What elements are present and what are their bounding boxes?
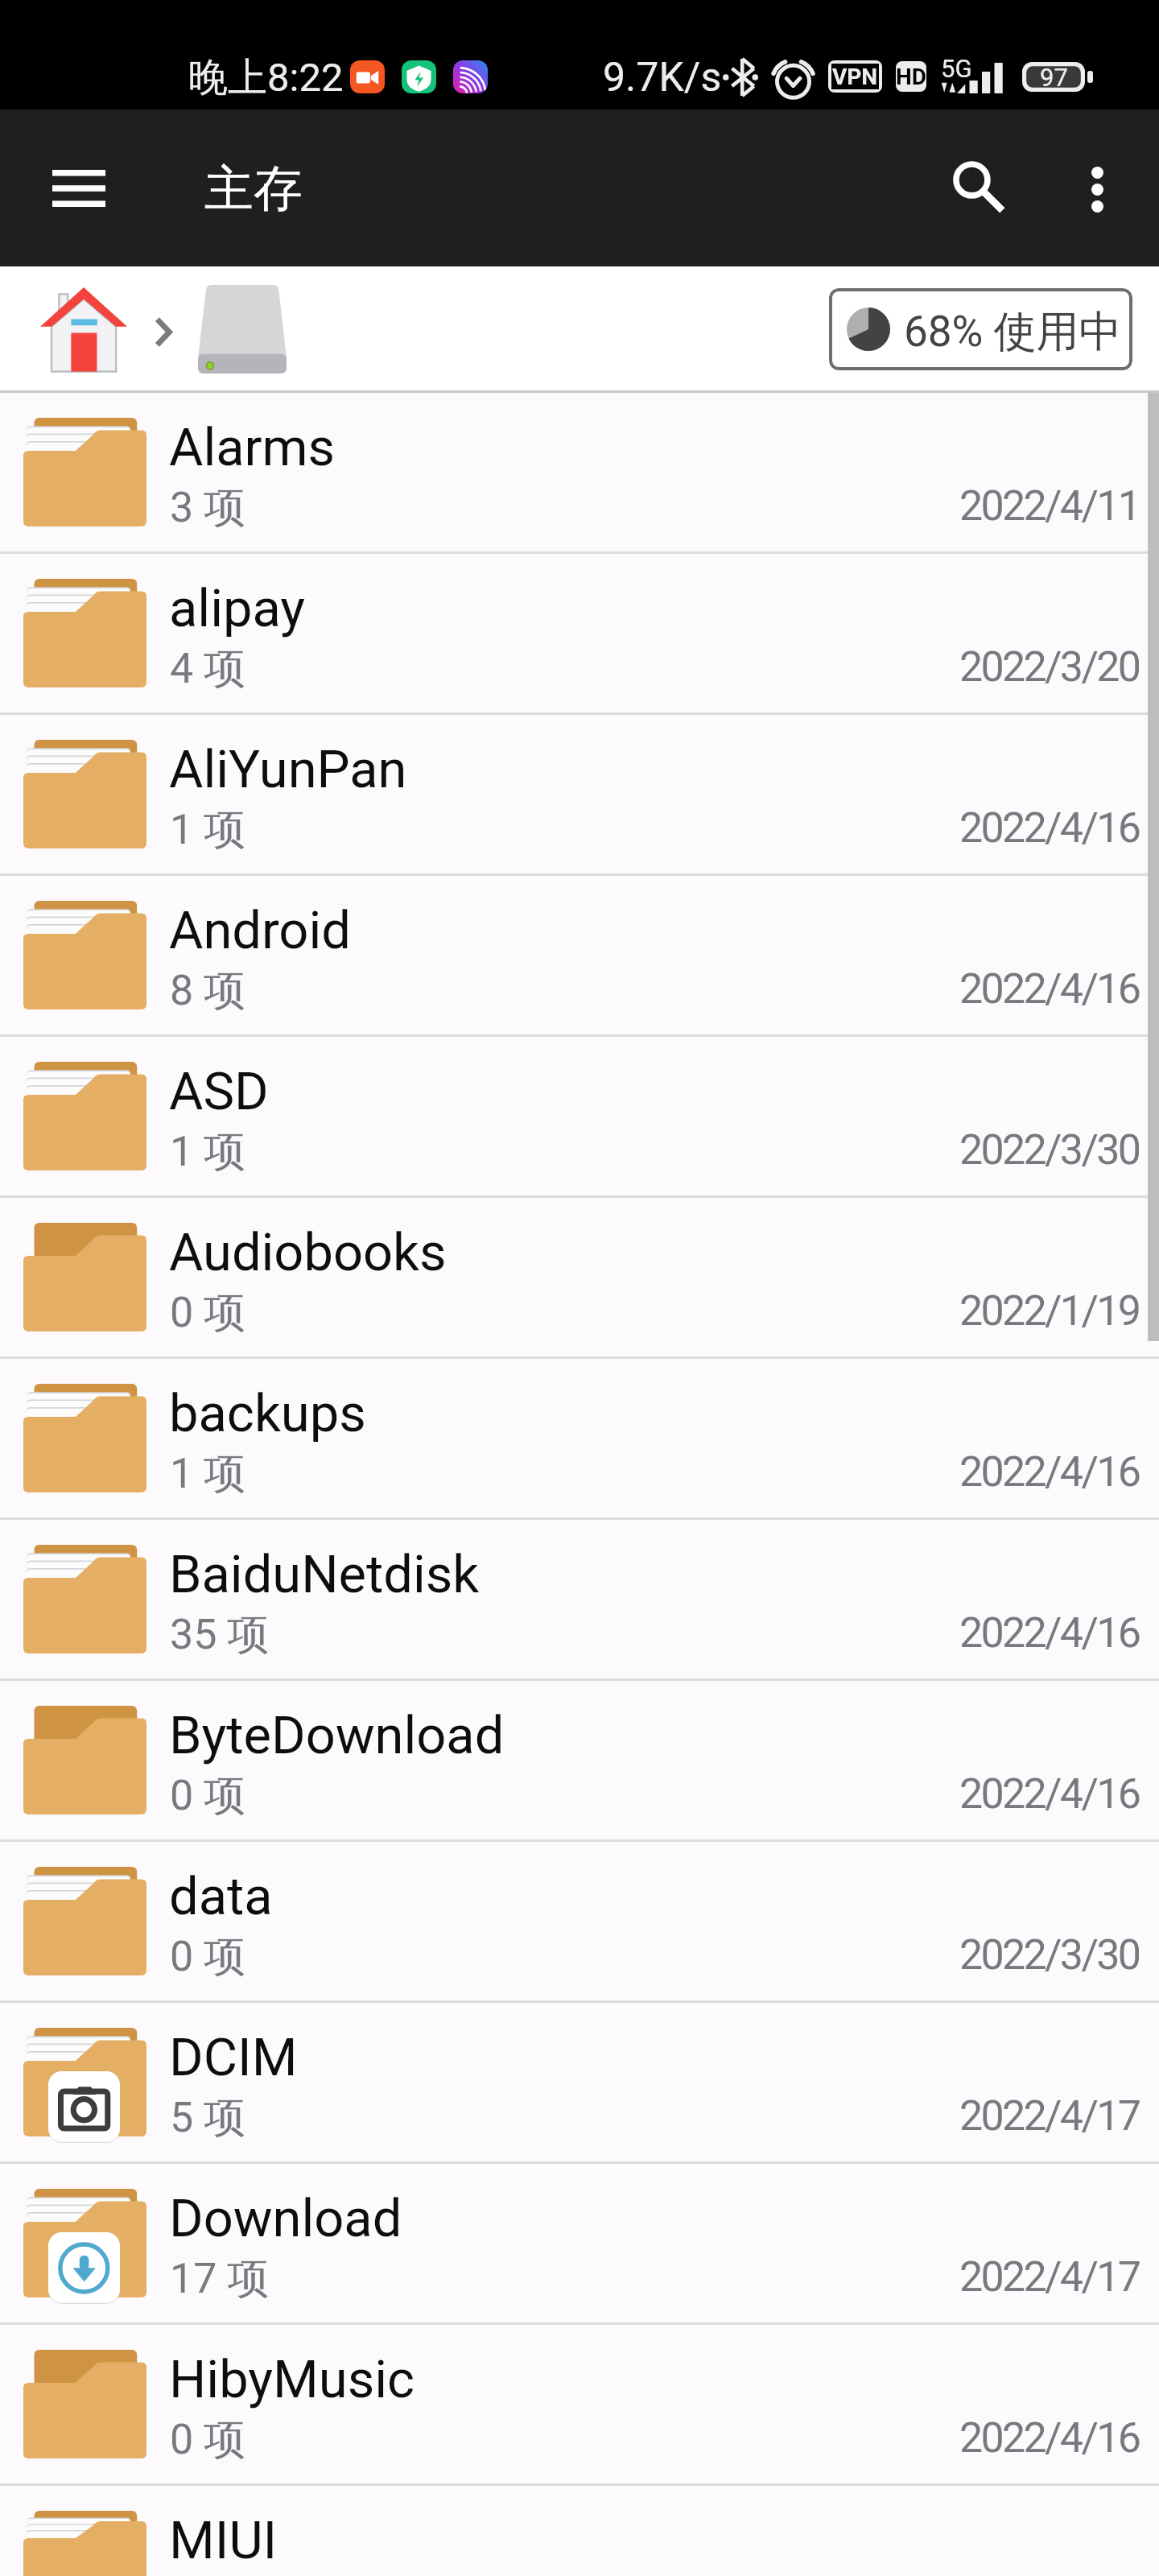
staticText: 2022/4/16 (959, 2413, 1140, 2462)
button[interactable]: Search (930, 138, 1029, 238)
button[interactable]: DCIM (0, 2003, 1159, 2164)
button[interactable]: MIUI (0, 2486, 1159, 2576)
staticText: ByteDownload (169, 1705, 505, 1766)
button[interactable]: Internal storage (198, 285, 287, 374)
staticText: 5 项 (170, 2091, 246, 2145)
staticText: 68% 使用中 (904, 305, 1122, 359)
staticText: 2022/4/17 (959, 2252, 1140, 2301)
staticText: 0 项 (170, 2413, 246, 2467)
button[interactable]: data (0, 1842, 1159, 2003)
staticText: 2022/4/16 (959, 803, 1140, 852)
staticText: 9.7K/s (603, 54, 722, 101)
button[interactable]: ByteDownload (0, 1681, 1159, 1842)
staticText: ASD (169, 1061, 269, 1122)
staticText: 2022/3/20 (959, 642, 1140, 691)
staticText: 2022/4/16 (959, 1447, 1140, 1496)
staticText: 2022/4/16 (959, 964, 1140, 1013)
staticText: 3 项 (170, 481, 246, 535)
staticText: Android (169, 900, 351, 961)
staticText: BaiduNetdisk (169, 1544, 480, 1605)
staticText: 1 项 (170, 803, 246, 857)
staticText: 0 项 (170, 1286, 246, 1340)
staticText: 1 项 (170, 1447, 246, 1501)
staticText: Alarms (169, 417, 336, 478)
button[interactable]: Audiobooks (0, 1198, 1159, 1359)
staticText: 17 项 (170, 2252, 270, 2306)
staticText: alipay (169, 578, 306, 639)
staticText: backups (169, 1383, 366, 1444)
staticText: 35 项 (170, 1608, 270, 1662)
staticText: 1 项 (170, 1125, 246, 1179)
staticText: 2022/3/30 (959, 1930, 1140, 1979)
staticText: Download (169, 2188, 402, 2249)
staticText: 主存 (204, 158, 303, 220)
staticText: 8 项 (170, 964, 246, 1018)
staticText: HibyMusic (169, 2349, 415, 2410)
button[interactable]: Alarms (0, 393, 1159, 554)
button[interactable]: Android (0, 876, 1159, 1037)
staticText: HD (896, 64, 926, 90)
staticText: 5G (941, 54, 972, 83)
staticText: DCIM (169, 2027, 298, 2088)
button[interactable]: ASD (0, 1037, 1159, 1198)
staticText: 2022/4/11 (959, 481, 1140, 530)
button[interactable]: AliYunPan (0, 715, 1159, 876)
staticText: 4 项 (170, 642, 246, 696)
staticText: VPN (832, 64, 878, 89)
button[interactable]: backups (0, 1359, 1159, 1520)
button[interactable]: alipay (0, 554, 1159, 715)
button[interactable]: Open navigation menu (32, 142, 126, 235)
staticText: 2022/4/17 (959, 2091, 1140, 2140)
staticText: 2022/4/16 (959, 1769, 1140, 1818)
staticText: 2022/1/19 (959, 1286, 1140, 1335)
button[interactable]: BaiduNetdisk (0, 1520, 1159, 1681)
staticText: 0 项 (170, 1769, 246, 1823)
button[interactable]: More options (1047, 139, 1147, 239)
staticText: 2022/3/30 (959, 1125, 1140, 1174)
button[interactable]: HibyMusic (0, 2325, 1159, 2486)
staticText: AliYunPan (169, 739, 407, 800)
staticText: 晚上8:22 (188, 53, 344, 103)
staticText: 0 项 (170, 1930, 246, 1984)
staticText: data (169, 1866, 273, 1927)
button[interactable]: Download (0, 2164, 1159, 2325)
staticText: 2022/4/16 (959, 1608, 1140, 1657)
staticText: MIUI (169, 2510, 278, 2571)
button[interactable]: 68% 使用中 (829, 288, 1132, 370)
staticText: Audiobooks (169, 1222, 447, 1283)
button[interactable]: Home (40, 287, 127, 372)
staticText: 97 (1040, 63, 1068, 92)
